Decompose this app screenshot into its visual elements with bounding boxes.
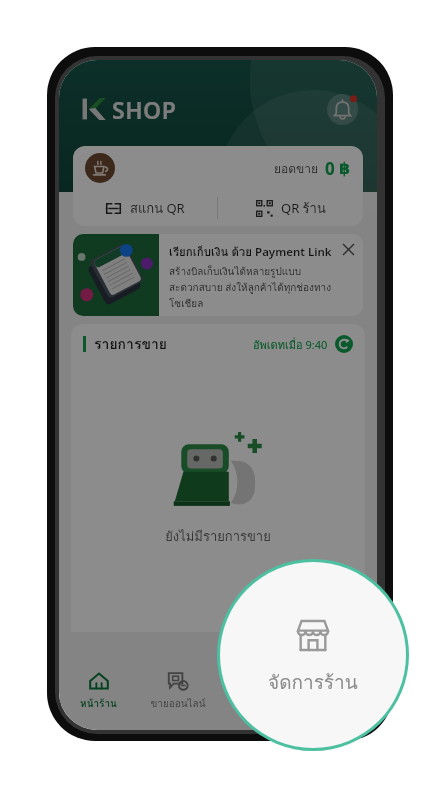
staticText: QR ร้าน <box>281 198 326 219</box>
staticText: ยังไม่มีรายการขาย <box>165 526 271 547</box>
staticText: 0 <box>325 157 335 180</box>
button[interactable]: เรียกเก็บเงิน ด้วย Payment Link <box>73 234 363 316</box>
button[interactable]: Close <box>339 240 357 258</box>
staticText: เรียกเก็บเงิน ด้วย Payment Link <box>169 243 332 261</box>
staticText: จัดการร้าน <box>268 667 358 697</box>
staticText: สะดวกสบาย ส่งให้ลูกค้าได้ทุกช่องทางโซเชี… <box>169 280 341 312</box>
button[interactable]: จัดการร้าน <box>220 562 406 748</box>
button[interactable]: จัดการร้าน <box>217 668 297 730</box>
staticText: ฿ <box>339 159 351 178</box>
staticText: อัพเดทเมื่อ 9:40 <box>253 336 328 353</box>
staticText: สแกน QR <box>130 198 185 219</box>
staticText: รายการขาย <box>94 333 168 355</box>
button[interactable]: ขายออนไลน์ <box>138 668 217 730</box>
button[interactable]: อื่นๆ <box>297 668 377 730</box>
staticText: หน้าร้าน <box>80 696 117 712</box>
button[interactable]: QR ร้าน <box>218 190 363 226</box>
staticText: จัดการร้าน <box>233 696 281 712</box>
staticText: ยอดขาย <box>274 159 319 178</box>
button[interactable]: Refresh <box>335 335 353 353</box>
staticText: ขายออนไลน์ <box>150 696 206 712</box>
button[interactable]: หน้าร้าน <box>59 668 138 730</box>
staticText: สร้างบิลเก็บเงินได้หลายรูปแบบ <box>169 264 301 280</box>
staticText: SHOP <box>112 94 177 125</box>
button[interactable]: Notifications <box>325 92 359 126</box>
button[interactable]: สแกน QR <box>73 190 217 226</box>
